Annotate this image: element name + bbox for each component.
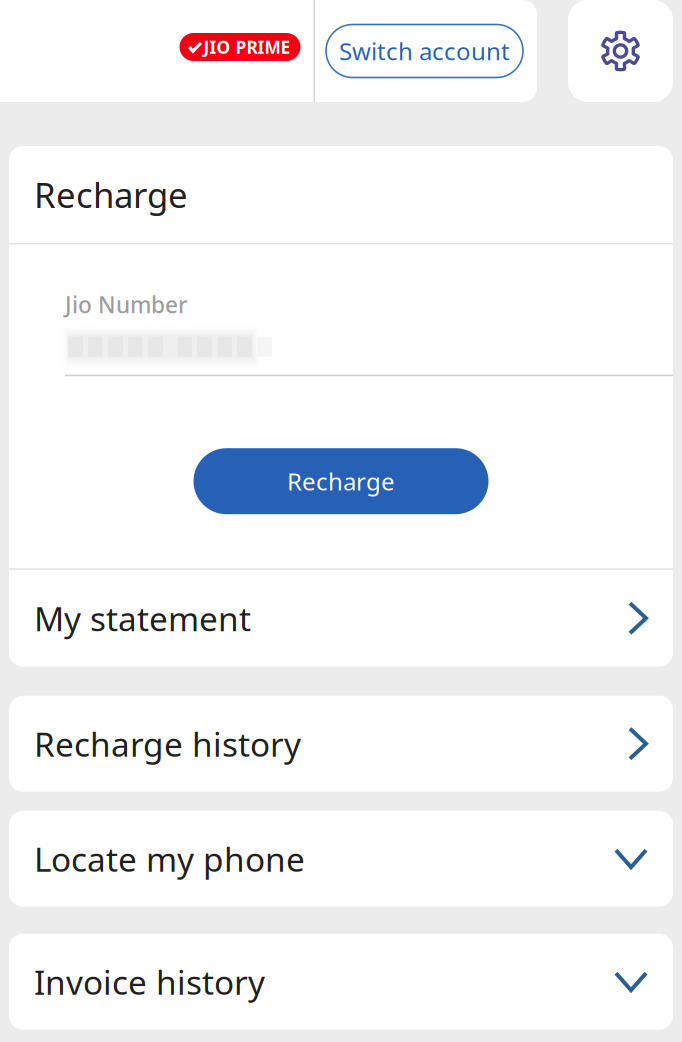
staticText: Locate my phone [34, 837, 305, 881]
button[interactable]: Switch account [326, 24, 523, 77]
button[interactable]: Settings [568, 0, 673, 102]
button[interactable]: Recharge [193, 448, 488, 514]
staticText: Jio Number [65, 289, 188, 320]
button[interactable]: Invoice history [9, 934, 673, 1030]
button[interactable]: My statement [9, 570, 673, 667]
staticText: Invoice history [34, 960, 265, 1004]
button[interactable]: JIO PRIME [179, 37, 300, 65]
staticText: Recharge [287, 465, 395, 497]
button[interactable]: Recharge history [9, 696, 673, 792]
staticText: My statement [34, 596, 251, 640]
staticText: Switch account [339, 35, 510, 67]
staticText: Recharge history [34, 722, 301, 766]
staticText: JIO PRIME [203, 35, 290, 58]
staticText: Recharge [34, 171, 188, 217]
button[interactable]: Locate my phone [9, 811, 673, 907]
